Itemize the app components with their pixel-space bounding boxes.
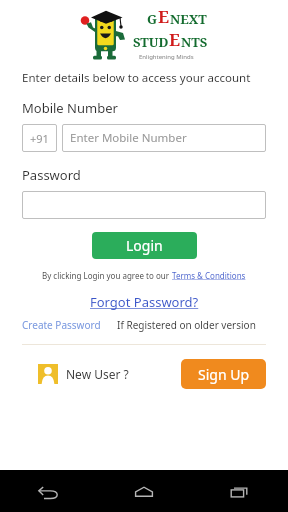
button[interactable]: Back xyxy=(0,471,96,512)
other: New user xyxy=(38,364,58,384)
button[interactable] xyxy=(22,191,266,219)
staticText: Login xyxy=(126,236,163,255)
staticText: Sign Up xyxy=(198,365,250,384)
staticText: New User ? xyxy=(66,366,129,382)
staticText: E xyxy=(158,5,170,28)
staticText: If Registered on older version xyxy=(117,318,256,332)
button[interactable]: Forgot Password? xyxy=(90,293,199,311)
staticText: STUD xyxy=(133,33,169,51)
staticText: NEXT xyxy=(170,10,207,28)
staticText: Enter details below to access your accou… xyxy=(22,70,288,86)
button[interactable]: Recents xyxy=(192,471,288,512)
staticText: G xyxy=(147,10,158,28)
staticText: +91 xyxy=(30,131,49,146)
staticText: Forgot Password? xyxy=(90,293,199,311)
staticText: E xyxy=(169,28,181,51)
staticText: Enlightening Minds xyxy=(139,53,194,61)
staticText: Password xyxy=(22,166,81,184)
staticText: Terms & Conditions xyxy=(172,270,246,281)
staticText: Create Password xyxy=(22,318,101,332)
staticText: Mobile Number xyxy=(22,99,118,117)
staticText: By clicking Login you agree to our xyxy=(42,270,172,281)
button[interactable]: Home xyxy=(96,471,192,512)
button[interactable]: +91 xyxy=(22,124,57,152)
button[interactable]: Enter Mobile Number xyxy=(62,124,266,152)
button[interactable]: Sign Up xyxy=(181,359,266,389)
button[interactable]: Terms & Conditions xyxy=(172,270,246,281)
staticText: NTS xyxy=(181,33,208,51)
staticText: Enter Mobile Number xyxy=(70,130,187,146)
button[interactable]: Create Password xyxy=(22,318,101,332)
button[interactable]: Login xyxy=(92,232,197,259)
